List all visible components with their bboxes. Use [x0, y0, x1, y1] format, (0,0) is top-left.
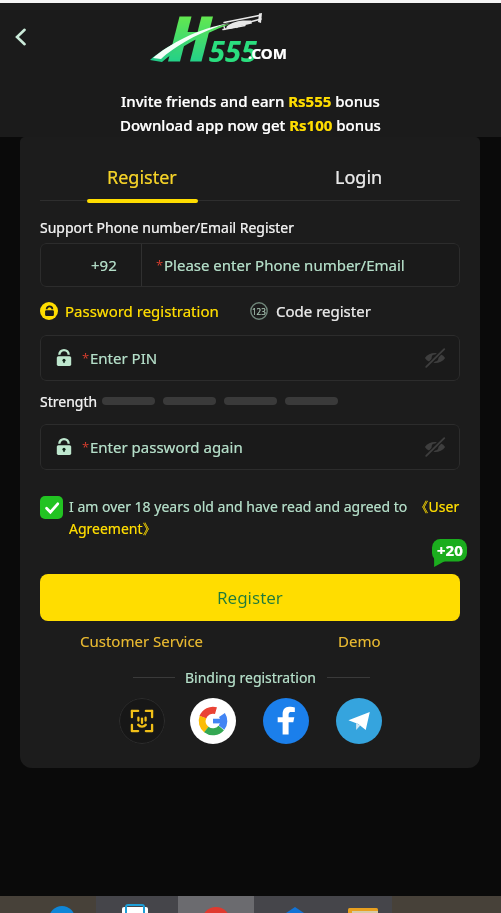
- staticText: Strength: [40, 392, 98, 411]
- staticText: Register: [107, 165, 177, 190]
- staticText: Customer Service: [80, 631, 204, 651]
- button[interactable]: Register: [90, 151, 194, 203]
- staticText: Login: [335, 165, 383, 190]
- staticText: Please enter Phone number/Email: [164, 255, 405, 275]
- button[interactable]: Face ID login: [119, 698, 165, 744]
- button[interactable]: Sign in with Google: [190, 698, 236, 744]
- button[interactable]: Password registration: [40, 301, 219, 321]
- staticText: Binding registration: [185, 668, 317, 687]
- staticText: 123: [252, 306, 266, 317]
- button[interactable]: +92: [40, 243, 460, 287]
- button[interactable]: Register: [40, 574, 460, 621]
- staticText: .COM: [248, 43, 287, 63]
- button[interactable]: Show password: [422, 434, 448, 460]
- button[interactable]: Agree to terms checkbox: [40, 496, 63, 519]
- button[interactable]: *: [40, 335, 460, 381]
- staticText: Agreement》: [69, 519, 157, 538]
- button[interactable]: Back: [5, 21, 37, 53]
- staticText: Support Phone number/Email Register: [40, 218, 295, 237]
- staticText: Demo: [338, 631, 381, 651]
- staticText: I am over 18 years old and have read and…: [69, 497, 460, 516]
- staticText: +92: [91, 255, 117, 275]
- button[interactable]: 123: [250, 301, 371, 321]
- staticText: +20: [437, 540, 463, 560]
- staticText: *: [82, 349, 90, 367]
- staticText: Download app now get Rs100 bonus: [120, 115, 381, 135]
- button[interactable]: Customer Service: [75, 629, 209, 653]
- staticText: *: [156, 256, 164, 274]
- staticText: Enter PIN: [90, 348, 158, 368]
- staticText: Enter password again: [90, 437, 243, 457]
- button[interactable]: *: [40, 424, 460, 470]
- staticText: 555: [209, 31, 257, 70]
- staticText: Invite friends and earn Rs555 bonus: [121, 91, 380, 111]
- staticText: Register: [217, 586, 283, 609]
- button[interactable]: I am over 18 years old and have read and…: [69, 496, 460, 541]
- button[interactable]: Demo: [309, 629, 409, 653]
- button[interactable]: Show password: [422, 345, 448, 371]
- button[interactable]: Login: [299, 151, 419, 203]
- button[interactable]: Sign in with Telegram: [336, 698, 382, 744]
- staticText: Code register: [276, 301, 371, 321]
- staticText: Password registration: [65, 301, 219, 321]
- staticText: *: [82, 438, 90, 456]
- button[interactable]: Sign in with Facebook: [263, 698, 309, 744]
